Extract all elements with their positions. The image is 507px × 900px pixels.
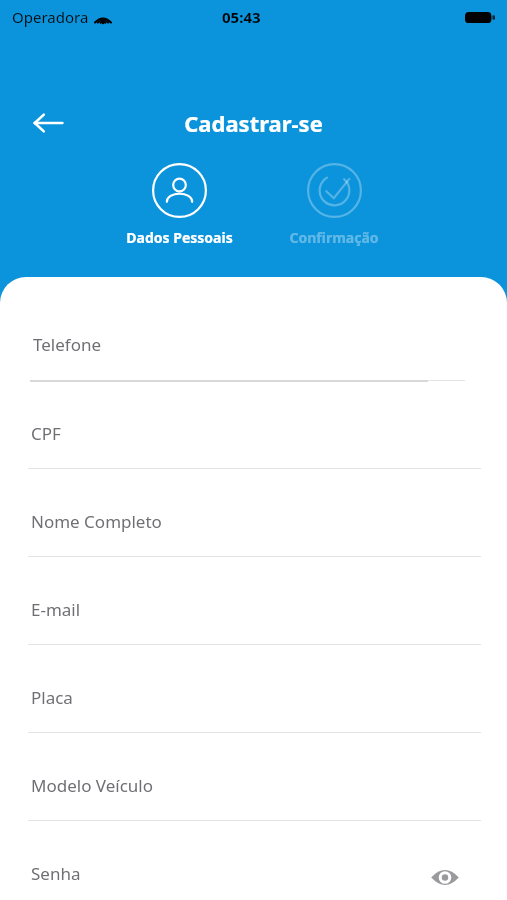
button[interactable]	[0, 575, 507, 650]
staticText: Operadora	[12, 7, 89, 27]
staticText: Dados Pessoais	[126, 228, 233, 247]
button[interactable]	[0, 310, 507, 385]
staticText: Nome Completo	[31, 510, 162, 533]
button[interactable]: Voltar	[26, 101, 70, 145]
button[interactable]: Confirmação	[277, 163, 391, 247]
staticText: Placa	[31, 686, 73, 709]
staticText: Confirmação	[289, 228, 379, 247]
staticText: Cadastrar-se	[0, 108, 507, 138]
button[interactable]	[0, 751, 507, 826]
button[interactable]: Mostrar senha	[425, 862, 465, 892]
button[interactable]	[0, 839, 507, 900]
staticText: E-mail	[31, 598, 81, 621]
staticText: Senha	[31, 862, 81, 885]
staticText: 05:43	[222, 7, 261, 27]
staticText: Modelo Veículo	[31, 774, 154, 797]
staticText: Telefone	[33, 333, 102, 356]
button[interactable]: Dados Pessoais	[124, 163, 234, 247]
staticText: CPF	[31, 422, 61, 445]
button[interactable]	[0, 663, 507, 738]
button[interactable]	[0, 399, 507, 474]
button[interactable]	[0, 487, 507, 562]
